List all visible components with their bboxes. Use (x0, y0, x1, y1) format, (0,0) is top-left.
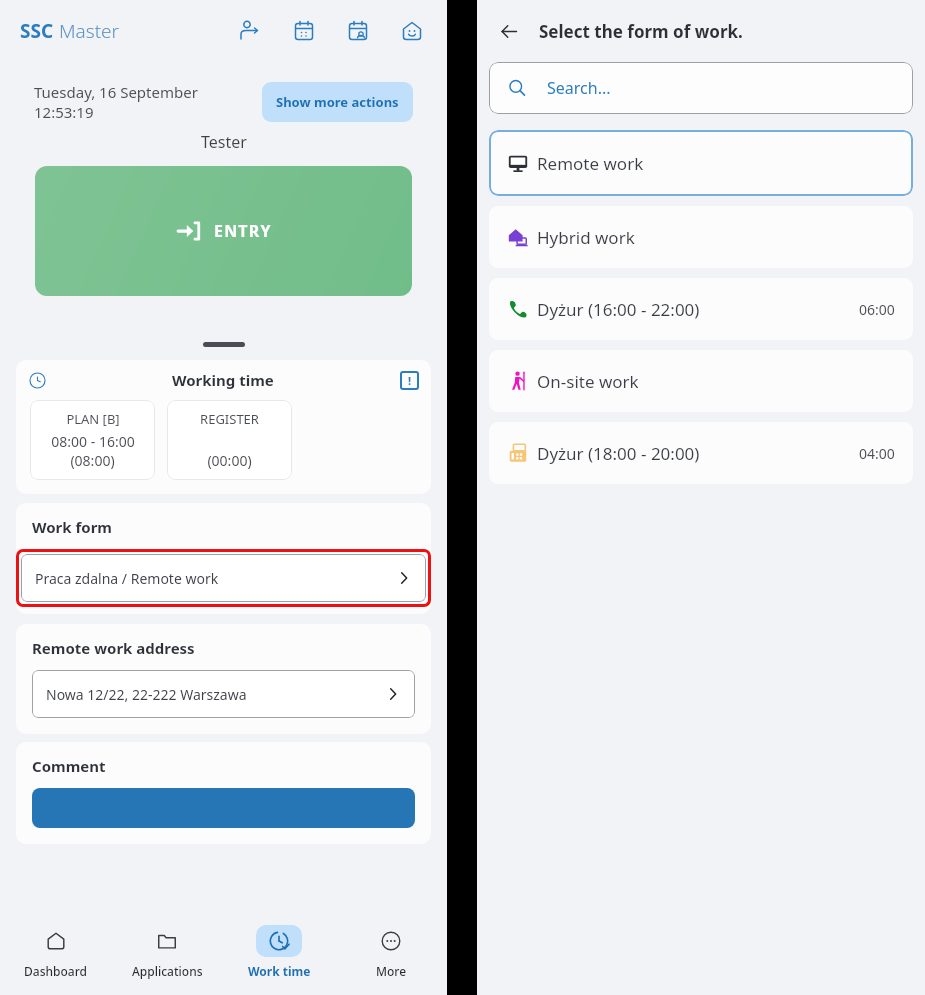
button[interactable]: Hybrid work (489, 206, 913, 268)
button[interactable]: Home smile (397, 16, 427, 46)
button[interactable]: Remote work (489, 130, 913, 196)
button[interactable]: Search... (489, 62, 913, 114)
button[interactable]: More (335, 908, 447, 995)
staticText: Comment (32, 756, 106, 776)
button[interactable]: Calendar (289, 16, 319, 46)
button[interactable]: Back (491, 13, 527, 49)
button[interactable]: On-site work (489, 350, 913, 412)
staticText: Master (59, 18, 120, 44)
button[interactable]: Dyżur (16:00 - 22:00) (489, 278, 913, 340)
staticText: 08:00 - 16:00 (51, 432, 135, 451)
button[interactable]: Show more actions (262, 82, 413, 122)
button[interactable]: Dyżur (18:00 - 20:00) (489, 422, 913, 484)
button[interactable] (32, 788, 415, 828)
staticText: SSC (20, 18, 54, 44)
button[interactable]: Applications (111, 908, 223, 995)
staticText: REGISTER (200, 410, 259, 428)
staticText: Applications (132, 963, 203, 979)
button[interactable]: Info (400, 371, 419, 390)
button[interactable]: ENTRY (35, 166, 412, 296)
staticText: Hybrid work (537, 226, 635, 249)
staticText: Praca zdalna / Remote work (35, 569, 219, 588)
staticText: More (376, 963, 407, 979)
staticText: Dyżur (16:00 - 22:00) (537, 298, 700, 321)
staticText: ! (408, 373, 412, 388)
staticText: ENTRY (214, 220, 272, 242)
staticText: PLAN [B] (66, 410, 120, 428)
button[interactable]: Calendar person (343, 16, 373, 46)
staticText: Select the form of work. (539, 20, 743, 43)
staticText: (00:00) (207, 451, 252, 470)
button[interactable]: Transfer (235, 16, 265, 46)
button[interactable]: REGISTER (167, 400, 292, 480)
staticText: Search... (547, 77, 611, 99)
staticText: 06:00 (859, 300, 895, 319)
staticText: Dyżur (18:00 - 20:00) (537, 442, 700, 465)
staticText: Remote work (537, 152, 644, 175)
staticText: Tuesday, 16 September (34, 82, 198, 102)
staticText: On-site work (537, 370, 639, 393)
staticText: 12:53:19 (34, 102, 94, 122)
button[interactable]: PLAN [B] (30, 400, 155, 480)
staticText: 04:00 (859, 444, 895, 463)
staticText: (08:00) (70, 451, 115, 470)
staticText: Work time (248, 963, 311, 979)
staticText: Tester (201, 131, 247, 153)
staticText: Show more actions (276, 93, 399, 111)
staticText: Work form (32, 517, 112, 537)
staticText: Working time (172, 370, 274, 390)
button[interactable]: Dashboard (0, 908, 111, 995)
button[interactable]: Work time (223, 908, 335, 995)
staticText: Dashboard (24, 963, 87, 979)
button[interactable]: Nowa 12/22, 22-222 Warszawa (32, 670, 415, 718)
staticText: Remote work address (32, 638, 195, 658)
staticText: Nowa 12/22, 22-222 Warszawa (46, 685, 247, 704)
button[interactable]: Praca zdalna / Remote work (21, 554, 426, 602)
